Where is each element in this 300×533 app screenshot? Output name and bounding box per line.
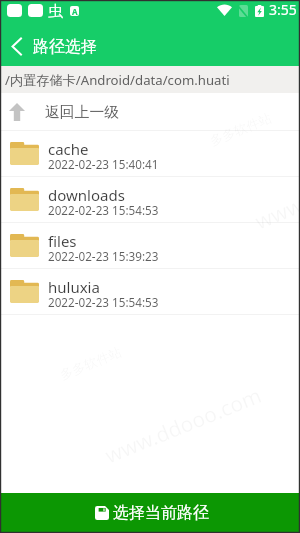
staticText: 3:55 (269, 0, 297, 19)
staticText: /内置存储卡/Android/data/com.huati (5, 71, 230, 89)
button[interactable]: cache (0, 131, 300, 176)
staticText: 选择当前路径 (113, 503, 209, 523)
staticText: files (48, 231, 77, 251)
staticText: 2022-02-23 15:54:53 (48, 202, 159, 218)
staticText: A (72, 6, 78, 16)
button[interactable]: huluxia (0, 269, 300, 314)
staticText: 路径选择 (33, 37, 97, 57)
staticText: huluxia (48, 277, 100, 297)
staticText: 虫 (48, 2, 63, 21)
staticText: cache (48, 139, 89, 159)
button[interactable]: 选择当前路径 (0, 493, 300, 533)
staticText: downloads (48, 185, 125, 205)
staticText: 2022-02-23 15:40:41 (48, 156, 159, 172)
button[interactable]: files (0, 223, 300, 268)
staticText: 2022-02-23 15:39:23 (48, 248, 159, 264)
staticText: 返回上一级 (45, 103, 119, 122)
button[interactable]: Back (0, 20, 33, 66)
staticText: www.ddooo.com (251, 147, 300, 236)
button[interactable]: downloads (0, 177, 300, 222)
staticText: 2022-02-23 15:54:53 (48, 294, 159, 310)
button[interactable]: 返回上一级 (0, 93, 300, 130)
